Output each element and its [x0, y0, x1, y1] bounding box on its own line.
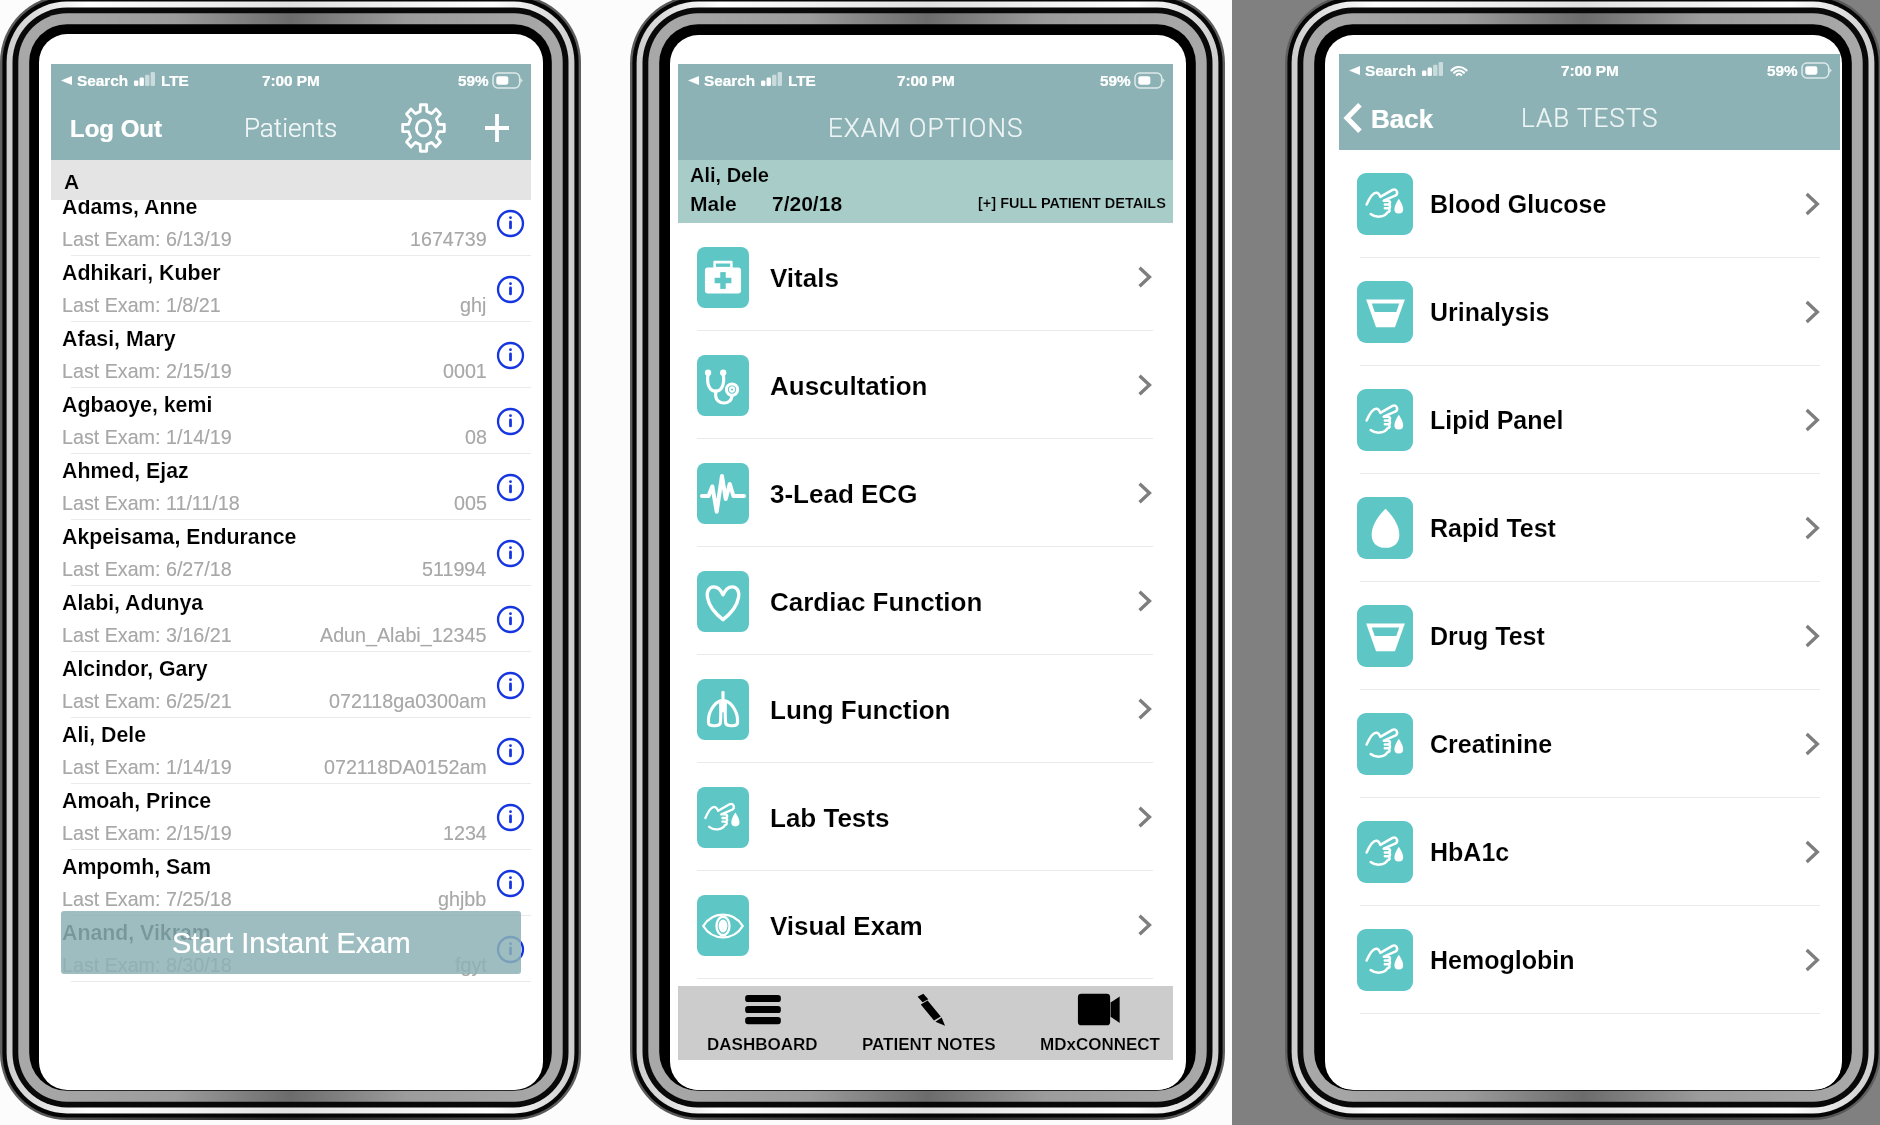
- button[interactable]: Blood Glucose: [1339, 150, 1840, 258]
- button[interactable]: Alabi, Adunya: [51, 586, 531, 652]
- staticText: 072118ga0300am: [329, 690, 487, 712]
- staticText: Ali, Dele: [690, 164, 769, 186]
- button[interactable]: Ahmed, Ejaz: [51, 454, 531, 520]
- button[interactable]: Auscultation: [678, 331, 1173, 439]
- staticText: Vitals: [770, 263, 839, 292]
- button[interactable]: Alcindor, Gary: [51, 652, 531, 718]
- button[interactable]: Lipid Panel: [1339, 366, 1840, 474]
- button[interactable]: Urinalysis: [1339, 258, 1840, 366]
- staticText: Lipid Panel: [1430, 406, 1564, 434]
- staticText: Afasi, Mary: [62, 327, 176, 351]
- staticText: Last Exam: 8/30/18: [62, 954, 232, 976]
- button[interactable]: Afasi, Mary: [51, 322, 531, 388]
- button[interactable]: Lung Function: [678, 655, 1173, 763]
- button[interactable]: HbA1c: [1339, 798, 1840, 906]
- button[interactable]: Back: [1345, 103, 1434, 133]
- staticText: fgyt: [455, 954, 487, 976]
- staticText: Last Exam: 3/16/21: [62, 624, 232, 646]
- button[interactable]: MDxCONNECT: [1040, 986, 1160, 1060]
- staticText: Log Out: [70, 115, 162, 142]
- button[interactable]: Vitals: [678, 223, 1173, 331]
- staticText: Back: [1371, 104, 1434, 133]
- button[interactable]: Creatinine: [1339, 690, 1840, 798]
- staticText: MDxCONNECT: [1040, 1035, 1160, 1054]
- staticText: Adams, Anne: [62, 195, 198, 219]
- button[interactable]: Settings: [399, 104, 447, 152]
- staticText: PATIENT NOTES: [862, 1035, 996, 1054]
- staticText: ghjbb: [438, 888, 487, 910]
- staticText: 7/20/18: [772, 192, 843, 215]
- staticText: Last Exam: 11/11/18: [62, 492, 240, 514]
- button[interactable]: Akpeisama, Endurance: [51, 520, 531, 586]
- staticText: 59%: [458, 72, 489, 89]
- button[interactable]: Start Instant Exam: [61, 911, 521, 974]
- staticText: Lab Tests: [770, 803, 890, 832]
- button[interactable]: Ampomh, Sam: [51, 850, 531, 916]
- staticText: 08: [465, 426, 487, 448]
- button[interactable]: Visual Exam: [678, 871, 1173, 979]
- staticText: Creatinine: [1430, 730, 1553, 758]
- button[interactable]: Agbaoye, kemi: [51, 388, 531, 454]
- staticText: Anand, Vikram: [62, 921, 211, 945]
- staticText: Akpeisama, Endurance: [62, 525, 297, 549]
- staticText: Last Exam: 6/13/19: [62, 228, 232, 250]
- staticText: [+] FULL PATIENT DETAILS: [978, 195, 1166, 211]
- button[interactable]: Hemoglobin: [1339, 906, 1840, 1014]
- staticText: Last Exam: 1/14/19: [62, 426, 232, 448]
- staticText: LTE: [161, 72, 189, 89]
- staticText: DASHBOARD: [707, 1035, 818, 1054]
- staticText: Search: [77, 72, 129, 89]
- staticText: 072118DA0152am: [324, 756, 487, 778]
- staticText: 7:00 PM: [262, 72, 320, 89]
- staticText: Hemoglobin: [1430, 946, 1575, 974]
- button[interactable]: Drug Test: [1339, 582, 1840, 690]
- button[interactable]: Rapid Test: [1339, 474, 1840, 582]
- staticText: A: [64, 170, 80, 193]
- staticText: Last Exam: 6/25/21: [62, 690, 232, 712]
- staticText: Last Exam: 2/15/19: [62, 360, 232, 382]
- staticText: Patients: [244, 113, 338, 143]
- staticText: Male: [690, 192, 737, 215]
- staticText: Last Exam: 1/14/19: [62, 756, 232, 778]
- button[interactable]: Anand, Vikram: [51, 916, 531, 982]
- staticText: 1234: [443, 822, 487, 844]
- staticText: Start Instant Exam: [172, 927, 411, 959]
- staticText: Search: [1365, 62, 1417, 79]
- staticText: Ahmed, Ejaz: [62, 459, 189, 483]
- staticText: Agbaoye, kemi: [62, 393, 213, 417]
- staticText: ghj: [460, 294, 487, 316]
- staticText: Rapid Test: [1430, 514, 1556, 542]
- staticText: Blood Glucose: [1430, 190, 1607, 218]
- button[interactable]: Cardiac Function: [678, 547, 1173, 655]
- staticText: 3-Lead ECG: [770, 479, 918, 508]
- staticText: Last Exam: 2/15/19: [62, 822, 232, 844]
- button[interactable]: PATIENT NOTES: [862, 986, 996, 1060]
- staticText: Ampomh, Sam: [62, 855, 212, 879]
- button[interactable]: Amoah, Prince: [51, 784, 531, 850]
- staticText: Alcindor, Gary: [62, 657, 208, 681]
- staticText: Visual Exam: [770, 911, 923, 940]
- button[interactable]: Log Out: [62, 109, 170, 148]
- button[interactable]: DASHBOARD: [707, 986, 818, 1060]
- staticText: LAB TESTS: [1521, 103, 1659, 133]
- staticText: Adun_Alabi_12345: [320, 624, 487, 646]
- staticText: 005: [454, 492, 487, 514]
- button[interactable]: Lab Tests: [678, 763, 1173, 871]
- staticText: Search: [704, 72, 756, 89]
- button[interactable]: Add patient: [477, 108, 517, 148]
- button[interactable]: Adams, Anne: [51, 190, 531, 256]
- staticText: Auscultation: [770, 371, 928, 400]
- staticText: Last Exam: 7/25/18: [62, 888, 232, 910]
- staticText: 511994: [422, 558, 487, 580]
- button[interactable]: 3-Lead ECG: [678, 439, 1173, 547]
- staticText: Adhikari, Kuber: [62, 261, 221, 285]
- staticText: Amoah, Prince: [62, 789, 212, 813]
- button[interactable]: Adhikari, Kuber: [51, 256, 531, 322]
- button[interactable]: Ali, Dele: [51, 718, 531, 784]
- staticText: 59%: [1767, 62, 1798, 79]
- staticText: 59%: [1100, 72, 1131, 89]
- staticText: Drug Test: [1430, 622, 1545, 650]
- staticText: LTE: [788, 72, 816, 89]
- staticText: Cardiac Function: [770, 587, 983, 616]
- staticText: Alabi, Adunya: [62, 591, 204, 615]
